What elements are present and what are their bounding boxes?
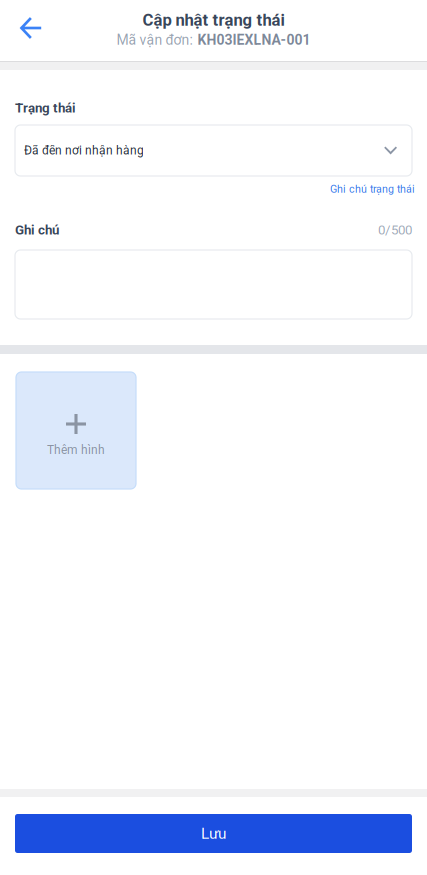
button[interactable]: Ghi chú trạng thái	[330, 182, 412, 196]
staticText: Mã vận đơn:	[116, 32, 192, 48]
staticText: Trạng thái	[15, 100, 76, 116]
staticText: 0/500	[378, 222, 412, 238]
staticText: Cập nhật trạng thái	[142, 10, 284, 30]
staticText: Đã đến nơi nhận hàng	[24, 143, 144, 158]
staticText: Ghi chú	[15, 222, 59, 238]
button[interactable]: Đã đến nơi nhận hàng	[15, 125, 412, 176]
staticText: Thêm hình	[47, 443, 105, 457]
staticText: KH03IEXLNA-001	[197, 32, 310, 48]
staticText: Lưu	[201, 824, 226, 842]
staticText: Ghi chú trạng thái	[330, 183, 415, 195]
button[interactable]: Back	[0, 0, 59, 61]
button[interactable]: Lưu	[15, 814, 412, 853]
button[interactable]: Thêm hình	[16, 372, 136, 489]
